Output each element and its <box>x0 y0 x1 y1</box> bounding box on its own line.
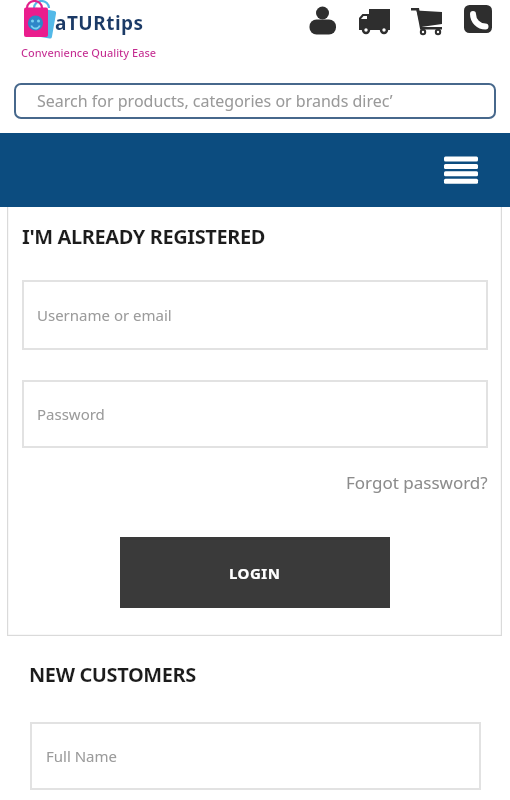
button[interactable]: Full Name <box>30 722 481 790</box>
button[interactable]: Search for products, categories or brand… <box>14 83 496 119</box>
button[interactable] <box>309 5 337 35</box>
staticText: Password <box>37 404 105 424</box>
button[interactable]: Username or email <box>22 280 488 350</box>
staticText: NEW CUSTOMERS <box>29 661 196 688</box>
staticText: Search for products, categories or brand… <box>37 90 393 112</box>
button[interactable]: LOGIN <box>120 537 390 608</box>
button[interactable]: Forgot password? <box>346 471 488 494</box>
staticText: Full Name <box>46 746 117 766</box>
staticText: LOGIN <box>229 563 281 583</box>
staticText: aTURtips <box>55 10 144 36</box>
button[interactable] <box>410 5 443 35</box>
staticText: Convenience Quality Ease <box>21 45 157 60</box>
button[interactable] <box>358 5 391 35</box>
staticText: I'M ALREADY REGISTERED <box>22 223 265 250</box>
staticText: Username or email <box>37 305 172 325</box>
button[interactable]: Password <box>22 380 488 448</box>
button[interactable] <box>464 5 493 34</box>
button[interactable] <box>444 154 478 186</box>
